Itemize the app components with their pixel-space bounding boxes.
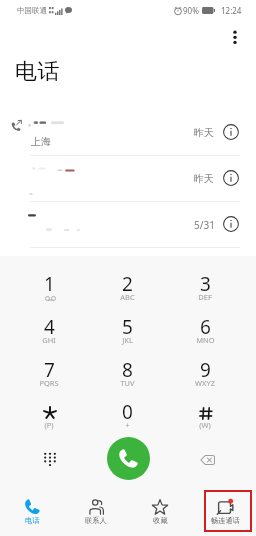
button[interactable]: Call details	[220, 167, 242, 189]
staticText: GHI	[42, 335, 56, 345]
button[interactable]: 5/31	[0, 202, 256, 247]
button[interactable]: 联系人	[73, 490, 119, 531]
staticText: PQRS	[39, 378, 59, 388]
staticText: (W)	[199, 420, 211, 430]
staticText: ABC	[120, 292, 135, 302]
staticText: 1	[44, 271, 55, 297]
staticText: 90%	[183, 5, 199, 16]
button[interactable]: 1	[23, 271, 75, 312]
staticText: 电话	[15, 58, 61, 86]
button[interactable]: 0	[101, 399, 153, 440]
button[interactable]: 收藏	[137, 490, 183, 531]
staticText: 5	[122, 314, 133, 340]
staticText: 6	[200, 314, 211, 340]
staticText: 畅连通话	[211, 516, 240, 525]
button[interactable]: Backspace	[191, 445, 221, 475]
staticText: 收藏	[153, 516, 168, 525]
staticText: (P)	[44, 420, 54, 430]
button[interactable]: 4	[23, 314, 75, 355]
staticText: 4	[44, 314, 55, 340]
staticText: 0	[122, 399, 133, 425]
button[interactable]: 5	[101, 314, 153, 355]
staticText: MNO	[196, 335, 215, 345]
staticText: 8	[122, 357, 133, 383]
button[interactable]: 8	[101, 357, 153, 398]
button[interactable]: Call	[107, 437, 150, 480]
button[interactable]: 3	[179, 271, 231, 312]
staticText: JKL	[122, 335, 133, 345]
staticText: WXYZ	[195, 378, 215, 388]
button[interactable]: 上海	[0, 110, 256, 155]
staticText: TUV	[120, 378, 135, 388]
button[interactable]: 7	[23, 357, 75, 398]
staticText: 昨天	[194, 126, 214, 139]
staticText: 12:24	[221, 5, 242, 16]
staticText: +	[125, 420, 130, 430]
staticText: 昨天	[194, 172, 214, 185]
button[interactable]: 9	[179, 357, 231, 398]
staticText: 联系人	[85, 516, 107, 525]
staticText: 2	[122, 271, 133, 297]
button[interactable]: 昨天	[0, 156, 256, 201]
staticText: 电话	[25, 516, 40, 525]
button[interactable]: Call details	[220, 121, 242, 143]
staticText: 上海	[31, 135, 51, 148]
staticText: 5/31	[194, 218, 215, 232]
staticText: 7	[44, 357, 55, 383]
button[interactable]: (P)	[23, 399, 75, 440]
button[interactable]: More options	[223, 25, 247, 49]
staticText: 3	[200, 271, 211, 297]
button[interactable]: Hide keypad	[35, 444, 65, 474]
button[interactable]: 电话	[9, 490, 55, 531]
button[interactable]: 2	[101, 271, 153, 312]
staticText: 9	[200, 357, 211, 383]
button[interactable]: (W)	[179, 399, 231, 440]
button[interactable]: Call details	[220, 213, 242, 235]
button[interactable]: 畅连通话	[202, 490, 248, 531]
staticText: 中国联通	[17, 6, 47, 15]
staticText: DEF	[198, 292, 212, 302]
button[interactable]: 6	[179, 314, 231, 355]
